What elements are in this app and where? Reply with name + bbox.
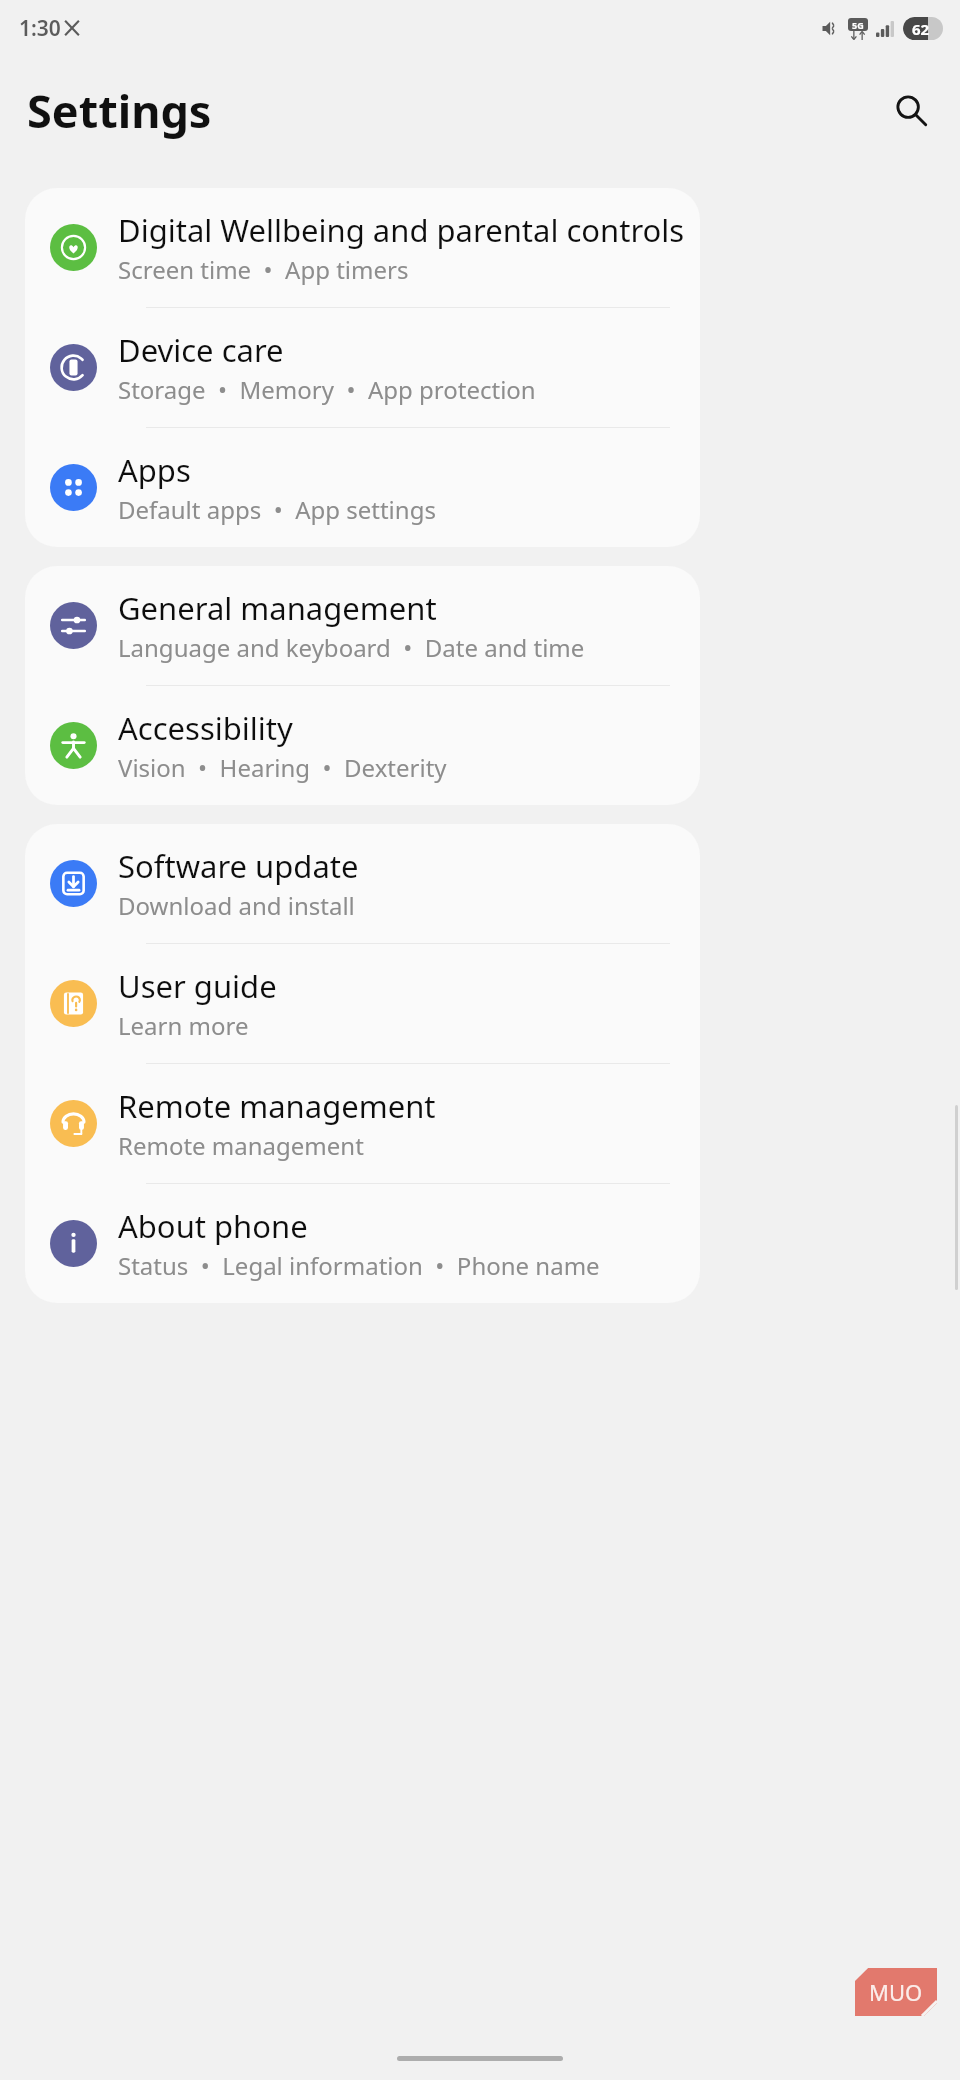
staticText: Status • Legal information • Phone name (118, 1249, 600, 1282)
button[interactable]: Software update (25, 824, 700, 943)
staticText: Storage • Memory • App protection (118, 373, 536, 406)
staticText: Software update (118, 845, 359, 887)
button[interactable]: Search (882, 81, 940, 139)
staticText: MUO (869, 1977, 923, 2007)
button[interactable]: Digital Wellbeing and parental controls (25, 188, 700, 307)
button[interactable]: Remote management (25, 1064, 700, 1183)
staticText: Vision • Hearing • Dexterity (118, 751, 447, 784)
button[interactable]: User guide (25, 944, 700, 1063)
staticText: Learn more (118, 1009, 249, 1042)
staticText: Digital Wellbeing and parental controls (118, 209, 685, 251)
staticText: 1:30 (19, 14, 61, 43)
staticText: Language and keyboard • Date and time (118, 631, 585, 664)
button[interactable]: Apps (25, 428, 700, 547)
staticText: 5G (852, 19, 864, 31)
button[interactable]: About phone (25, 1184, 700, 1303)
button[interactable]: Device care (25, 308, 700, 427)
staticText: Remote management (118, 1129, 364, 1162)
staticText: Accessibility (118, 707, 293, 749)
button[interactable]: Accessibility (25, 686, 700, 805)
staticText: Default apps • App settings (118, 493, 436, 526)
staticText: Apps (118, 449, 191, 491)
button[interactable]: General management (25, 566, 700, 685)
staticText: About phone (118, 1205, 308, 1247)
staticText: General management (118, 587, 437, 629)
staticText: Settings (27, 80, 212, 141)
staticText: Download and install (118, 889, 355, 922)
staticText: Screen time • App timers (118, 253, 409, 286)
staticText: 62 (912, 19, 930, 39)
staticText: Device care (118, 329, 284, 371)
staticText: User guide (118, 965, 277, 1007)
staticText: Remote management (118, 1085, 436, 1127)
